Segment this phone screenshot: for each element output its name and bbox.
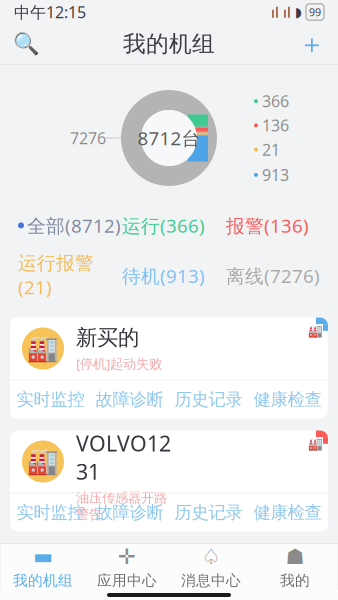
button[interactable]: 故障诊断: [90, 380, 169, 418]
staticText: 366: [262, 90, 289, 112]
button[interactable]: 🏭: [0, 430, 338, 531]
staticText: 🏭: [27, 334, 59, 363]
button[interactable]: 实时监控: [11, 380, 90, 418]
staticText: 21: [262, 139, 280, 160]
staticText: ♤: [201, 544, 220, 569]
button[interactable]: ✛: [85, 544, 169, 590]
staticText: 历史记录: [174, 502, 242, 523]
staticText: 我的机组: [123, 30, 215, 58]
staticText: 报警(136): [226, 213, 309, 238]
staticText: 🏭: [307, 437, 322, 450]
staticText: 油压传感器开路警告: [76, 490, 167, 522]
button[interactable]: 运行报警(21): [18, 252, 122, 299]
button[interactable]: 故障诊断: [90, 493, 169, 531]
staticText: 136: [262, 115, 289, 136]
staticText: 全部(8712): [27, 213, 121, 238]
button[interactable]: 历史记录: [169, 380, 248, 418]
staticText: 运行(366): [122, 213, 205, 238]
staticText: ＋: [298, 28, 325, 60]
staticText: 运行报警(21): [18, 252, 94, 299]
staticText: ◗: [295, 4, 302, 19]
staticText: ıl: [271, 2, 279, 22]
staticText: 故障诊断: [95, 389, 163, 410]
staticText: 我的: [280, 572, 310, 590]
staticText: 实时监控: [16, 389, 84, 410]
staticText: [停机]起动失败: [76, 355, 162, 372]
staticText: 故障诊断: [95, 502, 163, 523]
button[interactable]: 待机(913): [122, 263, 226, 288]
button[interactable]: 运行(366): [122, 213, 226, 238]
staticText: 🏭: [27, 447, 59, 476]
staticText: 待机(913): [122, 263, 205, 288]
staticText: 中午12:15: [14, 1, 86, 23]
staticText: 913: [262, 164, 289, 185]
button[interactable]: ☗: [253, 544, 337, 590]
staticText: ☗: [285, 544, 304, 569]
staticText: ▬: [33, 544, 53, 569]
staticText: 8712台: [137, 126, 200, 150]
button[interactable]: 实时监控: [11, 493, 90, 531]
staticText: 7276: [70, 127, 106, 149]
button[interactable]: 报警(136): [226, 213, 320, 238]
staticText: 🏭: [27, 560, 59, 589]
staticText: 消息中心: [181, 572, 241, 590]
staticText: ✛: [118, 544, 136, 569]
button[interactable]: 健康检查: [248, 380, 327, 418]
button[interactable]: 🏭: [0, 317, 338, 418]
staticText: 历史记录: [174, 389, 242, 410]
staticText: 实时监控: [16, 502, 84, 523]
button[interactable]: 🏭: [0, 543, 338, 600]
staticText: ıl: [283, 2, 291, 22]
staticText: 健康检查: [253, 502, 321, 523]
staticText: 应用中心: [97, 572, 157, 590]
button[interactable]: 全部(8712): [18, 213, 122, 238]
staticText: 新买的: [76, 325, 139, 351]
staticText: 99: [309, 5, 321, 19]
button[interactable]: 健康检查: [248, 493, 327, 531]
staticText: 206 VOLVO1231: [76, 401, 171, 486]
button[interactable]: Search: [6, 24, 46, 64]
button[interactable]: Add: [292, 24, 332, 64]
button[interactable]: ♤: [169, 544, 253, 590]
button[interactable]: ▬: [1, 544, 85, 590]
staticText: 🏭: [307, 324, 322, 337]
button[interactable]: 离线(7276): [226, 263, 320, 288]
staticText: 健康检查: [253, 389, 321, 410]
staticText: 🔍: [12, 32, 39, 56]
staticText: 离线(7276): [226, 263, 320, 288]
staticText: 我的机组: [13, 572, 73, 590]
button[interactable]: 历史记录: [169, 493, 248, 531]
